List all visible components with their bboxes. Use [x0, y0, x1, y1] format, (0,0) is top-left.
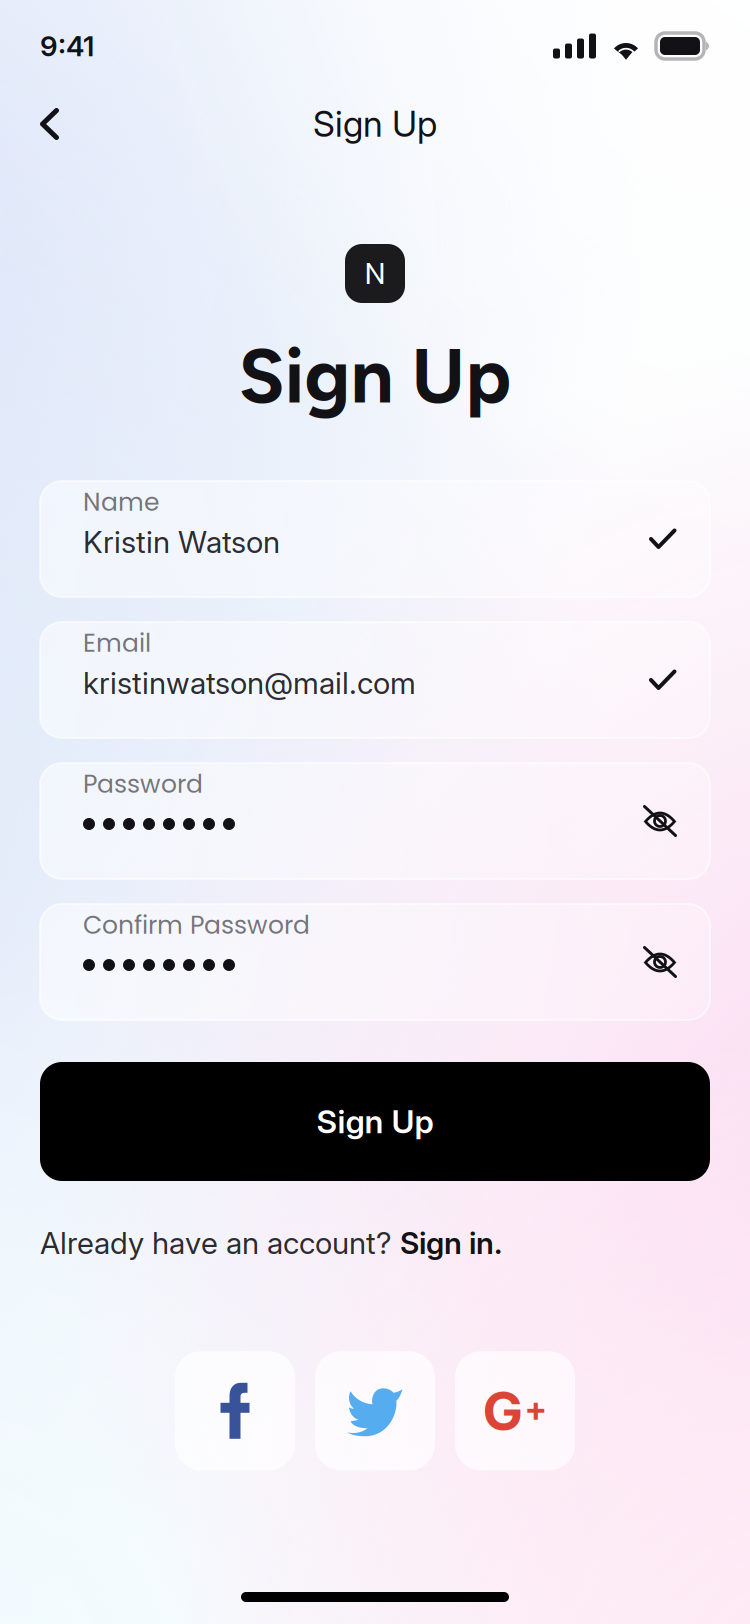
staticText: Sign Up: [316, 1102, 433, 1141]
staticText: Password: [83, 766, 203, 801]
staticText: Sign in.: [400, 1225, 502, 1261]
staticText: Email: [83, 625, 151, 660]
button[interactable]: Sign up with Twitter: [315, 1351, 435, 1470]
button[interactable]: Sign up with Facebook: [175, 1351, 295, 1470]
button[interactable]: Already have an account?: [40, 1215, 502, 1271]
button[interactable]: Sign Up: [40, 1062, 710, 1181]
staticText: Kristin Watson: [83, 524, 280, 560]
button[interactable]: Sign up with Google: [455, 1351, 575, 1470]
staticText: +: [524, 1388, 547, 1429]
staticText: Name: [83, 484, 160, 519]
staticText: Confirm Password: [83, 907, 310, 942]
staticText: Already have an account?: [40, 1225, 400, 1261]
staticText: kristinwatson@mail.com: [83, 665, 416, 701]
staticText: N: [364, 252, 385, 294]
staticText: G: [482, 1378, 523, 1443]
staticText: Sign Up: [238, 330, 511, 422]
staticText: 9:41: [40, 29, 94, 63]
staticText: Sign Up: [313, 103, 437, 145]
button[interactable]: Back: [19, 92, 80, 156]
